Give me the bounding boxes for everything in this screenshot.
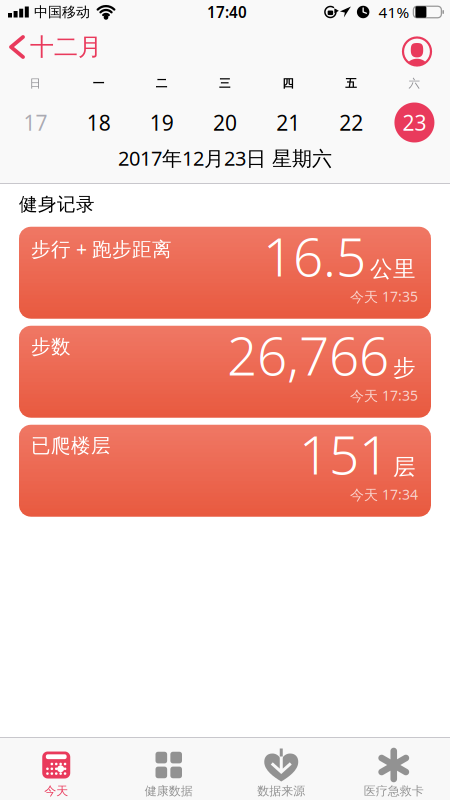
staticText: 17:40 [207,2,247,22]
button[interactable]: 已爬楼层 [19,425,431,517]
button[interactable]: 17 [4,109,67,136]
button[interactable]: 步数 [19,326,431,418]
button[interactable]: 19 [130,109,193,136]
staticText: 五 [345,76,357,90]
button[interactable] [403,37,431,65]
staticText: 中国移动 [34,3,90,21]
button[interactable]: 医疗急救卡 [337,750,450,797]
button[interactable]: 步行 + 跑步距离 [19,227,431,319]
staticText: 三 [219,76,231,90]
staticText: 数据来源 [257,784,305,798]
staticText: 41% [378,2,409,22]
staticText: 四 [282,76,294,90]
button[interactable]: 十二月 [11,32,102,62]
staticText: 层 [393,453,416,481]
staticText: 2017年12月23日 星期六 [118,145,332,171]
staticText: 十二月 [30,32,102,62]
staticText: 一 [93,76,105,90]
button[interactable]: 21 [257,109,320,136]
staticText: 步数 [31,335,71,359]
button[interactable]: 23 [383,102,446,142]
button[interactable]: 数据来源 [225,750,337,797]
staticText: 健身记录 [19,193,95,216]
staticText: 22 [339,109,363,136]
staticText: 今天 17:34 [350,485,418,504]
button[interactable]: 22 [320,109,383,136]
staticText: 今天 17:35 [350,386,418,405]
button[interactable]: 健康数据 [112,750,225,797]
staticText: 步 [393,354,416,382]
staticText: 19 [150,109,174,136]
staticText: 步行 + 跑步距离 [31,236,172,262]
staticText: 16.5 [263,221,366,291]
staticText: 17 [24,109,48,136]
button[interactable]: 今天 [0,750,112,797]
staticText: 健康数据 [145,784,193,798]
staticText: 六 [408,76,420,90]
staticText: 二 [156,76,168,90]
staticText: 23 [402,109,426,136]
button[interactable]: 18 [67,109,130,136]
staticText: 今天 [44,784,68,798]
staticText: 今天 17:35 [350,287,418,306]
staticText: 已爬楼层 [31,434,111,458]
staticText: 18 [87,109,111,136]
staticText: 20 [213,109,237,136]
staticText: 日 [30,76,42,90]
staticText: 公里 [370,255,416,283]
staticText: 26,766 [227,320,389,390]
staticText: 21 [276,109,300,136]
button[interactable]: 20 [193,109,256,136]
staticText: 医疗急救卡 [364,784,424,798]
staticText: 151 [299,419,389,489]
